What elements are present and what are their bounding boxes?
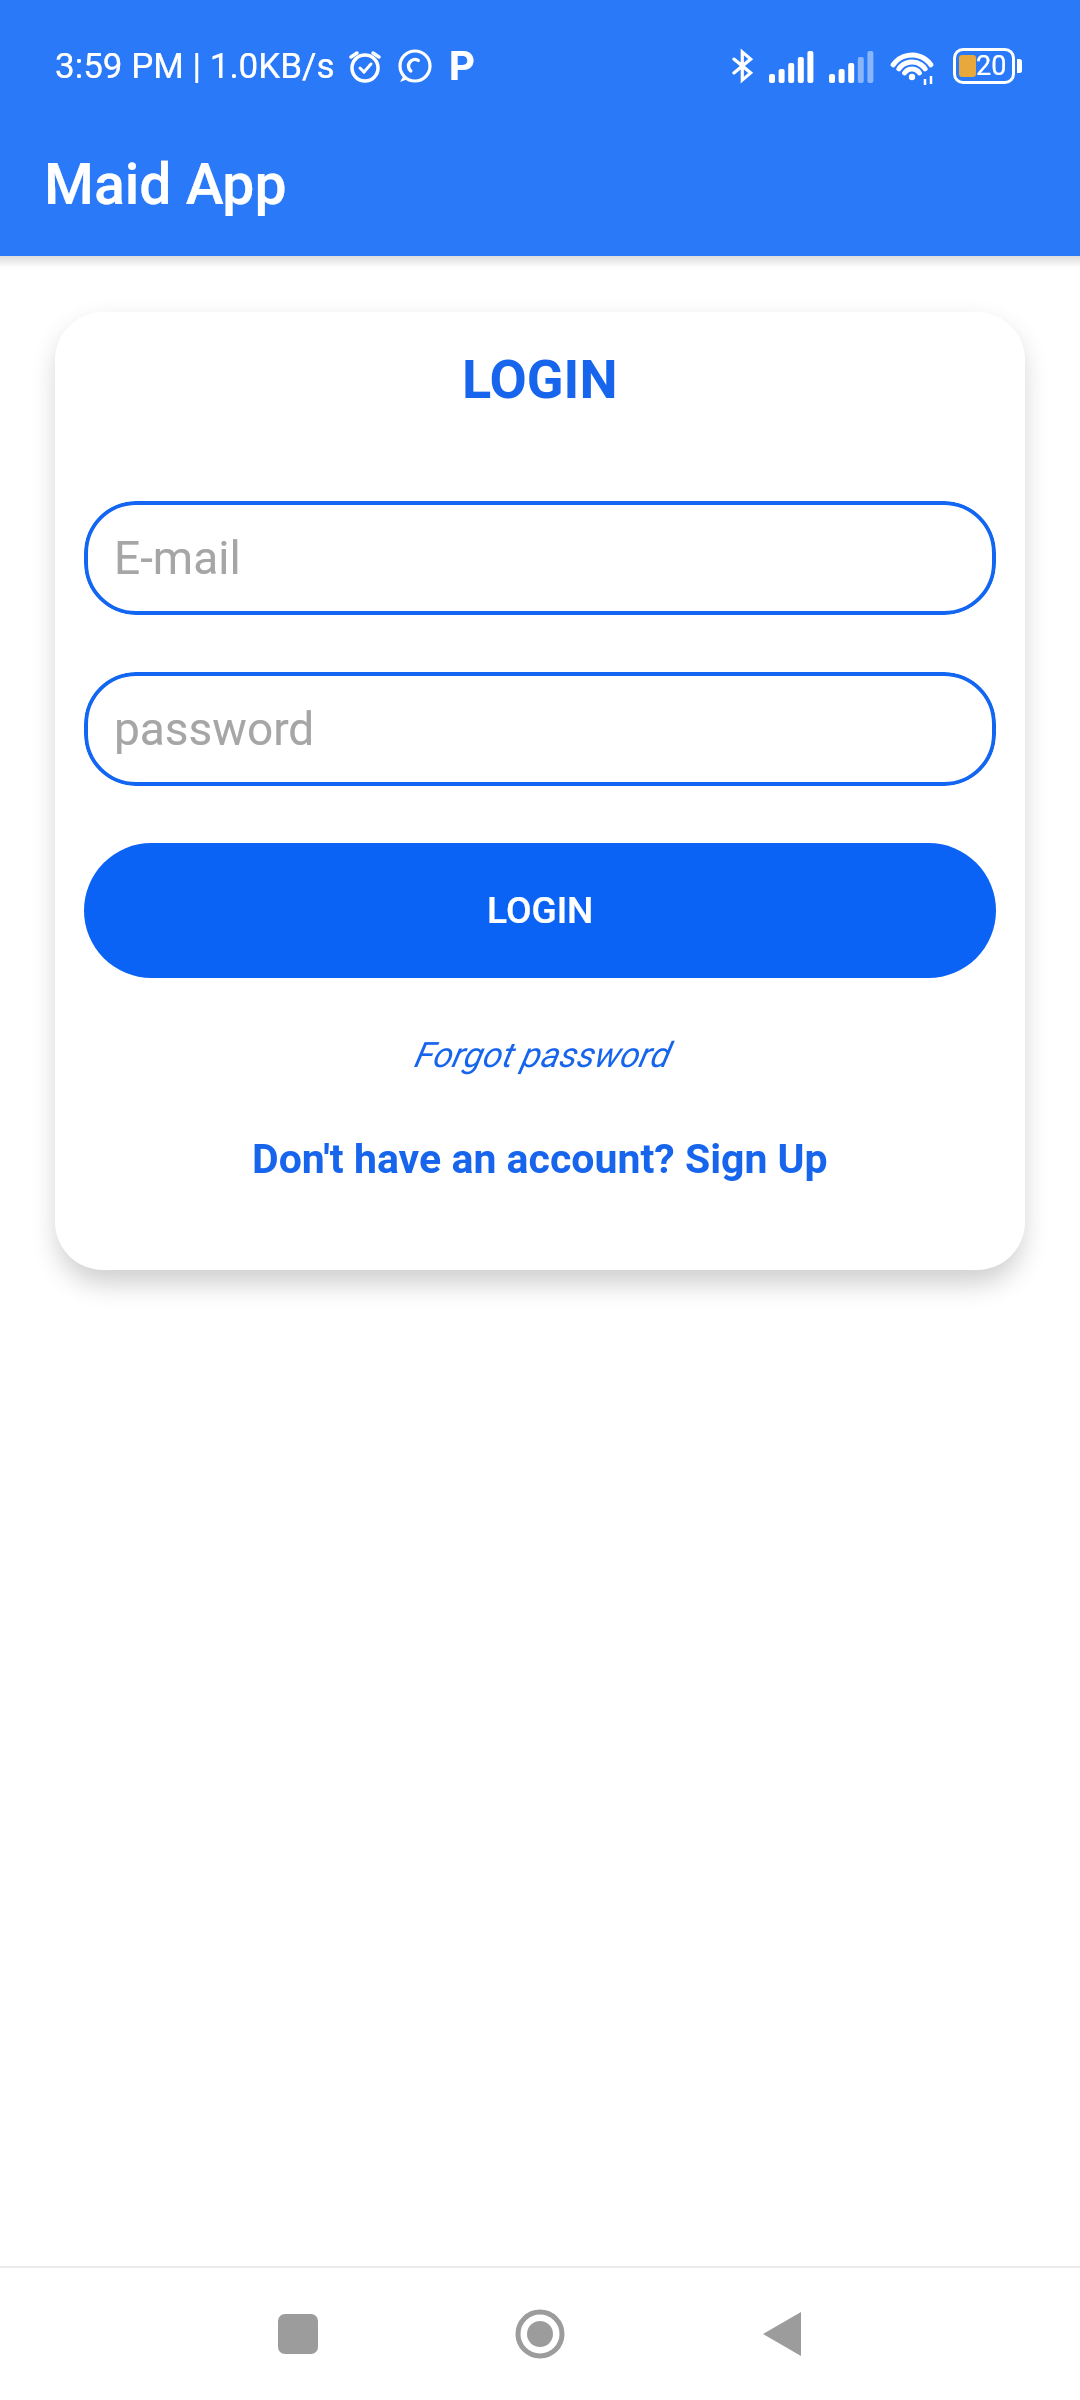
button[interactable]: E-mail <box>84 501 996 615</box>
button[interactable] <box>274 2310 322 2358</box>
button[interactable]: Forgot password <box>413 1035 668 1076</box>
button[interactable] <box>758 2310 806 2358</box>
button[interactable]: Don't have an account? Sign Up <box>252 1135 828 1183</box>
staticText: Don't have an account? Sign Up <box>252 1135 828 1183</box>
staticText: LOGIN <box>462 348 618 411</box>
staticText: P <box>449 43 475 90</box>
staticText: 20 <box>976 50 1007 82</box>
button[interactable] <box>516 2310 564 2358</box>
staticText: LOGIN <box>487 889 594 932</box>
staticText: password <box>114 702 315 756</box>
staticText: Maid App <box>44 151 287 218</box>
staticText: 3:59 PM | 1.0KB/s <box>55 46 335 87</box>
button[interactable]: LOGIN <box>84 843 996 978</box>
button[interactable]: password <box>84 672 996 786</box>
staticText: E-mail <box>114 531 241 585</box>
staticText: Forgot password <box>413 1035 668 1076</box>
